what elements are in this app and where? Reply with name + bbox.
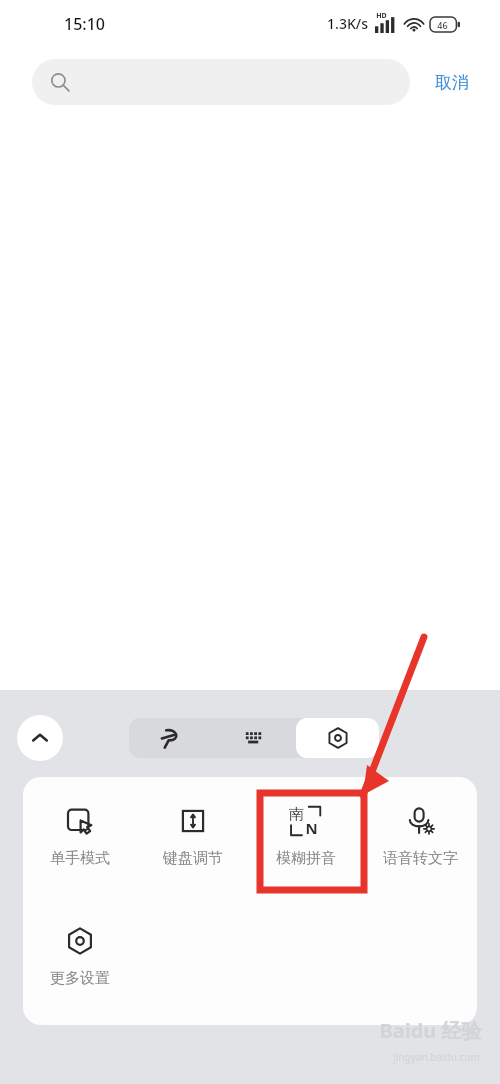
staticText: HD (376, 11, 387, 21)
button[interactable]: Settings (296, 718, 379, 758)
button[interactable]: Handwriting (129, 718, 212, 758)
button[interactable]: 键盘调节 (136, 793, 249, 893)
staticText: 更多设置 (50, 969, 110, 988)
staticText: jingyan.baidu.com (393, 1050, 480, 1064)
button[interactable]: Collapse (17, 715, 63, 761)
staticText: 语音转文字 (383, 849, 458, 868)
button[interactable]: 语音转文字 (363, 793, 477, 893)
other: Search (50, 72, 70, 92)
staticText: 南 (289, 805, 304, 824)
staticText: 模糊拼音 (276, 849, 336, 868)
staticText: 键盘调节 (163, 849, 223, 868)
staticText: 1.3K/s (327, 14, 368, 33)
button[interactable]: Keyboard (212, 718, 296, 758)
button[interactable]: 单手模式 (23, 793, 136, 893)
button[interactable]: 取消 (424, 59, 480, 105)
staticText: 46 (437, 19, 448, 31)
staticText: 单手模式 (50, 849, 110, 868)
staticText: Baidu 经验 (379, 1017, 482, 1044)
staticText: 取消 (435, 72, 469, 93)
button[interactable]: 南 (249, 793, 363, 893)
staticText: N (305, 818, 318, 838)
staticText: 15:10 (64, 13, 105, 35)
button[interactable]: 更多设置 (23, 913, 136, 1013)
button[interactable]: Search (32, 59, 410, 105)
